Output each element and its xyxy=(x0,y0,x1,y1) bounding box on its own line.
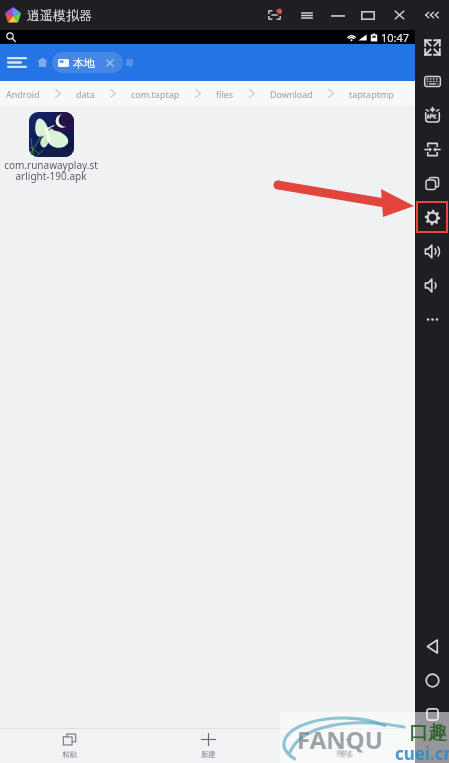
button[interactable]: Menu xyxy=(5,51,28,74)
button[interactable]: com.taptap xyxy=(131,88,180,100)
button[interactable]: Keyboard xyxy=(415,64,449,98)
staticText: taptaptmp xyxy=(349,88,394,100)
staticText: Android xyxy=(6,88,40,100)
button[interactable]: Settings xyxy=(415,200,449,234)
staticText: 本地 xyxy=(73,56,95,70)
button[interactable]: com.runawayplay.starlight-190.apk xyxy=(3,112,99,183)
button[interactable]: Volume up xyxy=(415,234,449,268)
button[interactable]: Maximize xyxy=(355,2,380,28)
staticText: 10:47 xyxy=(381,30,410,44)
button[interactable]: Tab list xyxy=(119,52,139,72)
staticText: files xyxy=(216,88,234,100)
staticText: data xyxy=(76,88,95,100)
staticText: 粘贴 xyxy=(62,750,77,759)
staticText: com.runawayplay.starlight-190.apk xyxy=(3,158,99,183)
button[interactable]: Volume down xyxy=(415,268,449,302)
button[interactable]: Install APK xyxy=(415,98,449,132)
button[interactable]: Close xyxy=(387,2,412,28)
staticText: 口趣 xyxy=(409,721,447,745)
button[interactable]: Menu xyxy=(294,2,319,28)
staticText: com.taptap xyxy=(131,88,180,100)
button[interactable]: Android xyxy=(6,88,40,100)
button[interactable]: 粘贴 xyxy=(0,729,139,763)
staticText: cuei.cn xyxy=(395,742,449,763)
button[interactable]: data xyxy=(76,88,95,100)
button[interactable]: Search xyxy=(3,30,19,44)
button[interactable]: Back xyxy=(415,629,449,663)
staticText: Download xyxy=(270,88,313,100)
button[interactable]: files xyxy=(216,88,234,100)
button[interactable]: Shake xyxy=(415,132,449,166)
button[interactable]: Minimize xyxy=(325,2,350,28)
button[interactable]: Fullscreen xyxy=(415,30,449,64)
button[interactable]: Collapse toolbar xyxy=(419,2,444,28)
button[interactable]: taptaptmp xyxy=(349,88,394,100)
button[interactable]: Home xyxy=(415,663,449,697)
button[interactable]: 新建 xyxy=(139,729,277,763)
staticText: 新建 xyxy=(201,750,216,759)
button[interactable]: More options xyxy=(415,302,449,336)
button[interactable]: Screenshot xyxy=(262,2,287,28)
button[interactable]: 更多 xyxy=(277,729,415,763)
staticText: 更多 xyxy=(339,750,354,759)
button[interactable]: Download xyxy=(270,88,313,100)
staticText: FANQU xyxy=(297,723,383,756)
button[interactable]: Recent apps xyxy=(415,697,449,731)
staticText: 逍遥模拟器 xyxy=(27,7,92,23)
staticText: 网站 xyxy=(336,748,352,758)
button[interactable]: Multi window xyxy=(415,166,449,200)
button[interactable]: 本地 xyxy=(52,52,123,73)
button[interactable]: Home xyxy=(32,52,52,72)
